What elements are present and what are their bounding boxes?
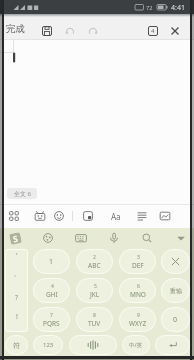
button[interactable] (74, 231, 88, 245)
staticText: ABC (88, 261, 101, 270)
button[interactable]: 2 (76, 249, 113, 274)
staticText: 7 (50, 312, 53, 319)
staticText: ! (16, 312, 18, 322)
staticText: 重输 (170, 287, 182, 295)
staticText: 2 (93, 254, 96, 261)
button[interactable]: 3 (119, 249, 156, 274)
staticText: 3 (137, 254, 140, 261)
staticText: 4:41 (171, 3, 185, 13)
staticText: DEF (132, 261, 144, 270)
button[interactable]: 4 (148, 26, 158, 36)
staticText: 8 (93, 312, 96, 319)
staticText: 1 (49, 257, 54, 267)
staticText: 9 (137, 312, 140, 319)
staticText: 中/英 (129, 341, 143, 349)
staticText: ? (15, 293, 19, 303)
button[interactable]: 完成 (4, 22, 30, 38)
button[interactable] (161, 249, 190, 274)
staticText: 4 (151, 27, 155, 35)
staticText: WXYZ (129, 319, 147, 328)
button[interactable] (7, 209, 21, 223)
button[interactable] (174, 231, 188, 245)
button[interactable]: 5 (76, 278, 113, 303)
button[interactable]: 重输 (161, 278, 190, 303)
staticText: PQRS (43, 319, 60, 328)
button[interactable]: 1 (33, 249, 70, 274)
button[interactable] (40, 24, 54, 38)
button[interactable] (69, 335, 117, 355)
staticText: 72 (146, 4, 153, 11)
staticText: JKL (90, 290, 100, 299)
button[interactable]: 中/英 (122, 335, 150, 355)
button[interactable]: 8 (76, 307, 113, 332)
button[interactable]: 123 (33, 335, 63, 355)
button[interactable] (63, 25, 77, 39)
button[interactable]: 符 (5, 335, 28, 355)
staticText: GHI (46, 290, 58, 299)
staticText: Aa (111, 211, 121, 222)
staticText: 0 (173, 315, 178, 325)
button[interactable] (155, 335, 190, 355)
button[interactable]: 7 (33, 307, 70, 332)
button[interactable]: 0 (161, 307, 190, 332)
staticText: 完成 (6, 23, 25, 35)
button[interactable]: ' (5, 249, 28, 332)
button[interactable] (168, 24, 182, 38)
staticText: 123 (43, 341, 54, 349)
staticText: 全文 6 (14, 190, 31, 198)
staticText: MNO (130, 290, 146, 299)
staticText: 。 (14, 271, 20, 278)
button[interactable] (86, 25, 100, 39)
button[interactable] (52, 209, 66, 223)
button[interactable] (33, 209, 47, 223)
staticText: 5 (94, 283, 97, 290)
staticText: 4 (51, 283, 54, 290)
button[interactable] (158, 209, 172, 223)
button[interactable] (140, 231, 154, 245)
button[interactable] (81, 209, 95, 223)
button[interactable] (135, 209, 149, 223)
button[interactable]: 6 (119, 278, 156, 303)
staticText: 6 (137, 283, 140, 290)
button[interactable]: S (8, 231, 22, 245)
staticText: ' (16, 251, 18, 261)
staticText: 符 (13, 341, 20, 350)
button[interactable] (41, 231, 55, 245)
button[interactable]: Aa (110, 209, 125, 223)
button[interactable]: 9 (119, 307, 156, 332)
button[interactable]: 4 (33, 278, 70, 303)
button[interactable] (107, 231, 121, 245)
staticText: TUV (88, 319, 101, 328)
staticText: S (12, 233, 19, 244)
